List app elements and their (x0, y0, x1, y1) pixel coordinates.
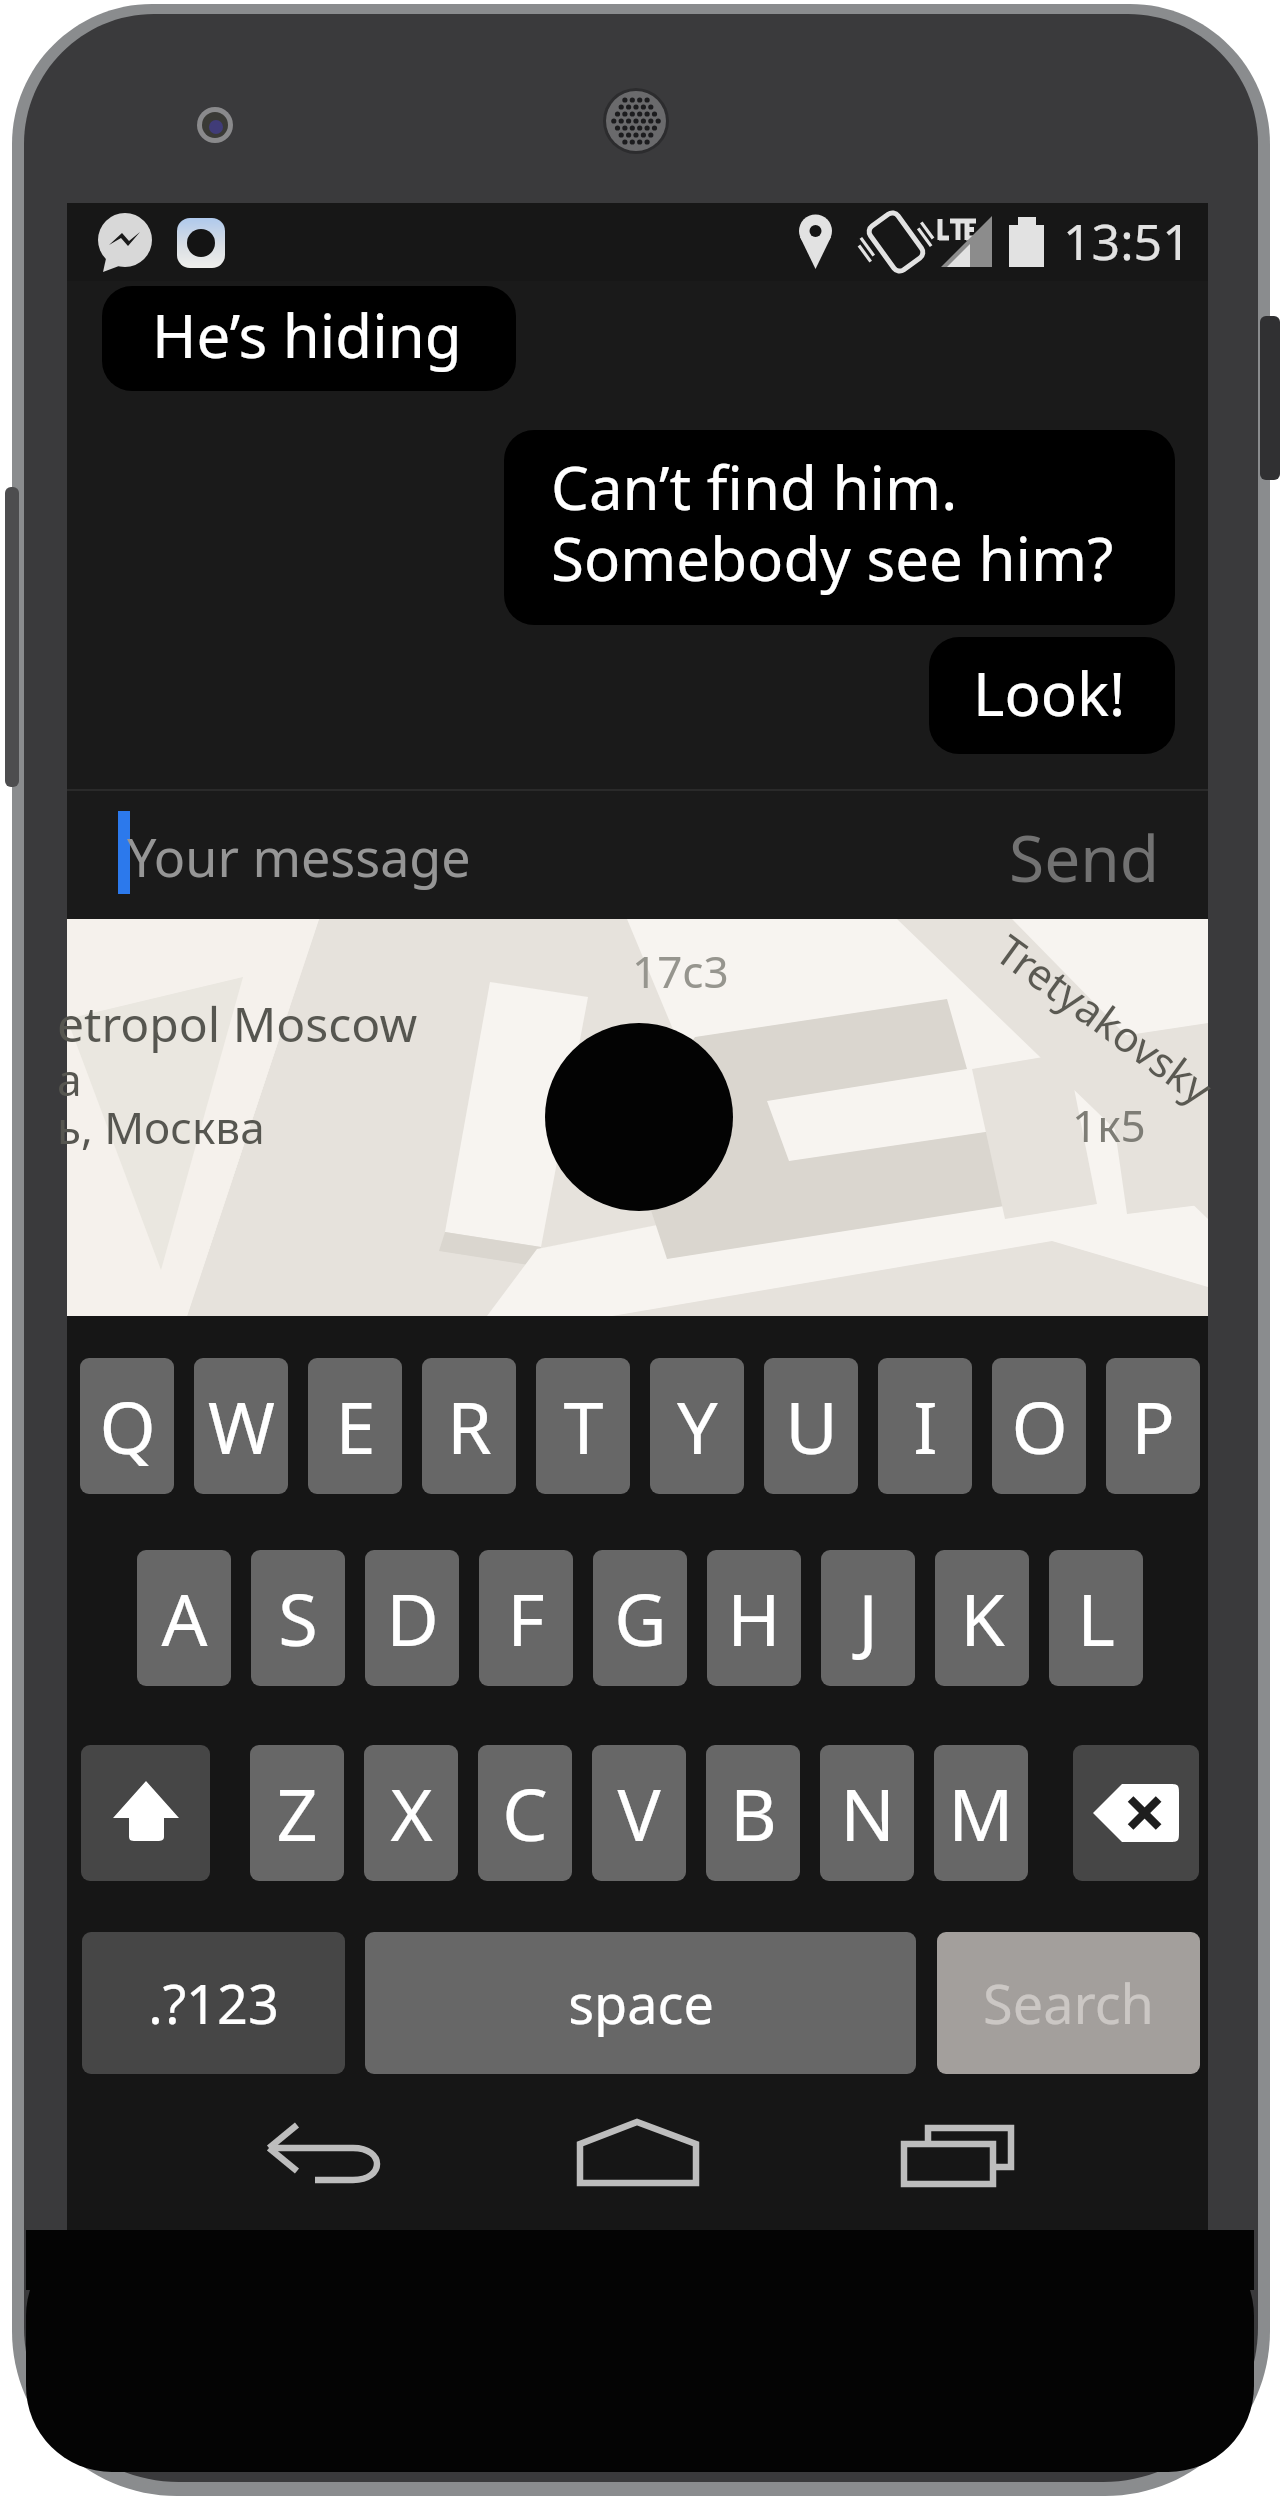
staticText: Look! (973, 652, 1126, 734)
staticText: 1к5 (1072, 1095, 1146, 1155)
staticText: Tretyakovsky (985, 921, 1224, 1116)
staticText: C (502, 1764, 548, 1862)
staticText: V (617, 1764, 661, 1862)
button[interactable]: T (536, 1358, 630, 1494)
staticText: Y (677, 1377, 718, 1475)
button[interactable]: G (593, 1550, 687, 1686)
button[interactable]: S (251, 1550, 345, 1686)
staticText: .?123 (148, 1966, 279, 2040)
staticText: He’s hiding (152, 294, 462, 376)
staticText: I (913, 1377, 938, 1475)
button[interactable]: Send (989, 794, 1179, 914)
button[interactable]: Back (249, 2097, 399, 2212)
button[interactable]: K (935, 1550, 1029, 1686)
button[interactable]: R (422, 1358, 516, 1494)
button[interactable]: U (764, 1358, 858, 1494)
staticText: etropol Moscow (57, 991, 418, 1056)
button[interactable]: F (479, 1550, 573, 1686)
staticText: O (1011, 1377, 1068, 1475)
button[interactable]: .?123 (82, 1932, 345, 2074)
button[interactable]: M (934, 1745, 1028, 1881)
button[interactable]: He’s hiding (102, 286, 516, 391)
button[interactable]: H (707, 1550, 801, 1686)
button[interactable]: Look! (929, 637, 1175, 754)
staticText: Can’t find him. Somebody see him? (551, 446, 1114, 598)
button[interactable]: I (878, 1358, 972, 1494)
staticText: P (1131, 1377, 1175, 1475)
button[interactable]: E (308, 1358, 402, 1494)
staticText: N (840, 1764, 895, 1862)
staticText: K (960, 1569, 1005, 1667)
staticText: J (858, 1569, 878, 1667)
staticText: W (208, 1377, 275, 1475)
staticText: D (386, 1569, 439, 1667)
staticText: Q (99, 1377, 156, 1475)
button[interactable]: P (1106, 1358, 1200, 1494)
button[interactable]: C (478, 1745, 572, 1881)
button[interactable]: D (365, 1550, 459, 1686)
staticText: T (563, 1377, 604, 1475)
staticText: A (161, 1569, 208, 1667)
staticText: L (1077, 1569, 1115, 1667)
staticText: H (727, 1569, 781, 1667)
button[interactable]: Z (250, 1745, 344, 1881)
button[interactable]: space (365, 1932, 916, 2074)
staticText: Search (983, 1966, 1154, 2040)
staticText: G (614, 1569, 667, 1667)
staticText: U (785, 1377, 838, 1475)
staticText: F (507, 1569, 545, 1667)
button[interactable]: Can’t find him. Somebody see him? (504, 430, 1175, 625)
button[interactable]: Home (567, 2097, 712, 2212)
staticText: Z (276, 1764, 318, 1862)
staticText: a (57, 1049, 82, 1109)
button[interactable]: X (364, 1745, 458, 1881)
staticText: ь, Москва (57, 1097, 265, 1157)
staticText: 13:51 (1063, 207, 1191, 275)
staticText: Send (1009, 814, 1160, 901)
button[interactable]: N (820, 1745, 914, 1881)
staticText: Your message (127, 821, 471, 892)
staticText: R (447, 1377, 492, 1475)
button[interactable]: Q (80, 1358, 174, 1494)
button[interactable]: V (592, 1745, 686, 1881)
button[interactable]: Recent apps (887, 2097, 1032, 2212)
staticText: X (390, 1764, 433, 1862)
staticText: 17c3 (632, 941, 729, 1001)
button[interactable]: Backspace (1073, 1745, 1199, 1881)
button[interactable]: Y (650, 1358, 744, 1494)
button[interactable]: L (1049, 1550, 1143, 1686)
button[interactable]: O (992, 1358, 1086, 1494)
button[interactable]: J (821, 1550, 915, 1686)
button[interactable]: W (194, 1358, 288, 1494)
button[interactable]: B (706, 1745, 800, 1881)
staticText: S (278, 1569, 318, 1667)
button[interactable]: Search (937, 1932, 1200, 2074)
staticText: B (730, 1764, 777, 1862)
staticText: E (335, 1377, 376, 1475)
staticText: M (948, 1764, 1014, 1862)
button[interactable]: Shared location on map (67, 919, 1208, 1316)
button[interactable]: A (137, 1550, 231, 1686)
button[interactable]: Shift (81, 1745, 210, 1881)
staticText: space (568, 1966, 714, 2040)
